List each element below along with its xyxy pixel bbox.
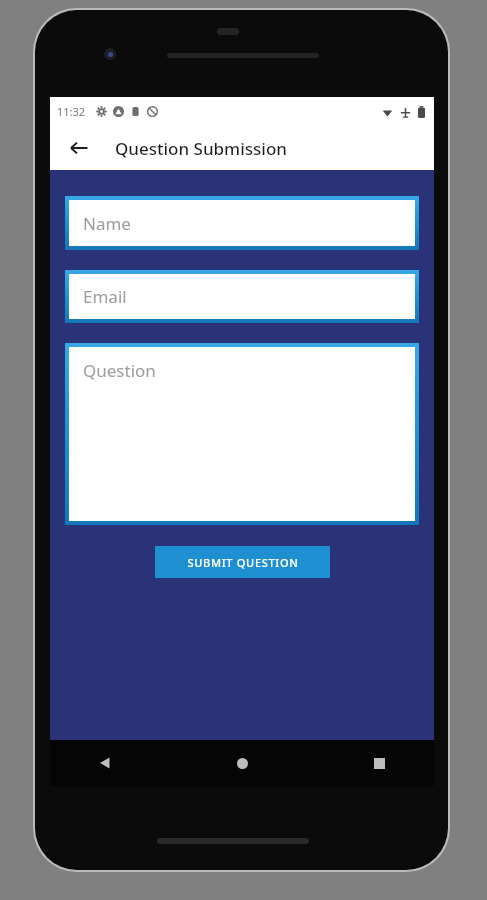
staticText: SUBMIT QUESTION	[187, 555, 299, 570]
staticText: Question Submission	[115, 137, 287, 160]
button[interactable]: Question	[69, 347, 415, 521]
button[interactable]: Name	[69, 200, 415, 246]
staticText: Email	[83, 285, 127, 308]
button[interactable]: Recent apps	[362, 746, 396, 780]
button[interactable]: Home	[225, 746, 259, 780]
button[interactable]: Back	[88, 746, 122, 780]
button[interactable]: Back	[62, 131, 96, 165]
button[interactable]: SUBMIT QUESTION	[155, 546, 330, 578]
staticText: Question	[83, 359, 156, 382]
staticText: Name	[83, 212, 131, 235]
button[interactable]: Email	[69, 274, 415, 319]
staticText: 11:32	[57, 104, 86, 119]
